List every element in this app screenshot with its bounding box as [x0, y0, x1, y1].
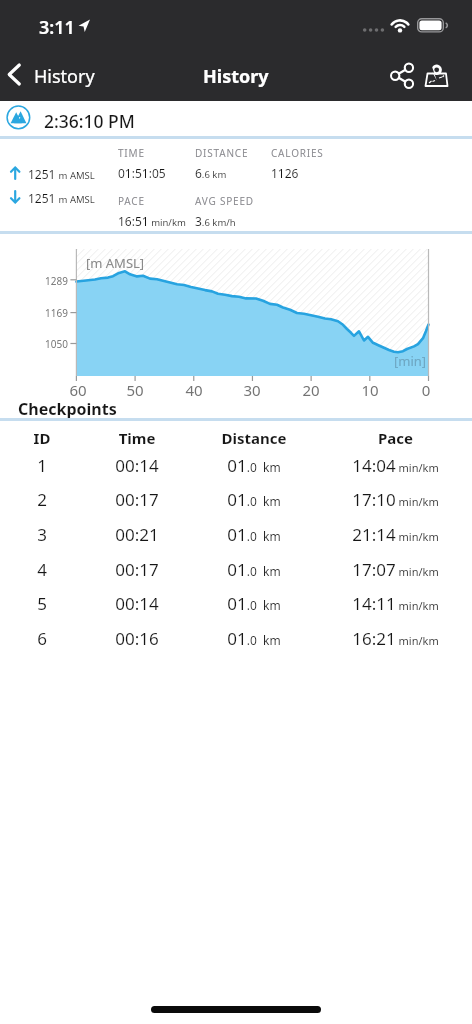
staticText: 1169	[34, 306, 68, 320]
staticText: 3.6 km/h	[195, 213, 236, 229]
button[interactable]	[0, 447, 472, 481]
button[interactable]	[422, 58, 452, 90]
button[interactable]	[0, 516, 472, 550]
staticText: 01.0 km	[204, 488, 304, 511]
staticText: 60	[63, 380, 93, 400]
staticText: 1289	[34, 274, 68, 288]
staticText: 20	[296, 380, 326, 400]
staticText: 21:14 min/km	[338, 523, 453, 546]
staticText: [min]	[394, 352, 427, 370]
staticText: 1	[12, 454, 72, 477]
staticText: 40	[179, 380, 209, 400]
staticText: 1251 m AMSL	[28, 166, 95, 182]
button[interactable]	[0, 101, 472, 137]
staticText: 00:14	[97, 592, 177, 615]
staticText: 0	[411, 380, 441, 400]
staticText: 00:16	[97, 627, 177, 650]
staticText: 3	[12, 523, 72, 546]
staticText: 1251 m AMSL	[28, 190, 95, 206]
staticText: DISTANCE	[195, 146, 249, 160]
staticText: 00:17	[97, 488, 177, 511]
staticText: 14:11 min/km	[338, 592, 453, 615]
staticText: 1126	[271, 165, 299, 181]
staticText: 16:51 min/km	[118, 213, 186, 229]
button[interactable]	[0, 481, 472, 515]
staticText: 3:11	[39, 15, 75, 40]
staticText: History	[203, 64, 269, 89]
staticText: Pace	[338, 428, 453, 448]
staticText: 4	[12, 558, 72, 581]
staticText: 6.6 km	[195, 165, 227, 181]
staticText: 01:51:05	[118, 165, 166, 181]
staticText: Distance	[204, 428, 304, 448]
button[interactable]	[0, 551, 472, 585]
button[interactable]: History	[6, 58, 110, 94]
staticText: 17:10 min/km	[338, 488, 453, 511]
staticText: 01.0 km	[204, 627, 304, 650]
staticText: 30	[237, 380, 267, 400]
staticText: 01.0 km	[204, 592, 304, 615]
staticText: 01.0 km	[204, 523, 304, 546]
staticText: 00:21	[97, 523, 177, 546]
staticText: 2	[12, 488, 72, 511]
staticText: 00:14	[97, 454, 177, 477]
staticText: 14:04 min/km	[338, 454, 453, 477]
staticText: 2:36:10 PM	[44, 109, 135, 133]
staticText: 17:07 min/km	[338, 558, 453, 581]
staticText: 01.0 km	[204, 454, 304, 477]
staticText: 16:21 min/km	[338, 627, 453, 650]
staticText: 5	[12, 592, 72, 615]
button[interactable]	[388, 60, 414, 90]
button[interactable]	[0, 620, 472, 654]
staticText: Time	[97, 428, 177, 448]
button[interactable]	[0, 585, 472, 619]
staticText: 6	[12, 627, 72, 650]
staticText: History	[34, 64, 95, 89]
staticText: [m AMSL]	[86, 254, 145, 272]
staticText: ID	[12, 428, 72, 448]
staticText: TIME	[118, 146, 145, 160]
staticText: 10	[355, 380, 385, 400]
staticText: CALORIES	[271, 146, 324, 160]
staticText: 50	[120, 380, 150, 400]
staticText: Checkpoints	[18, 398, 117, 420]
staticText: 1050	[34, 337, 68, 351]
staticText: 01.0 km	[204, 558, 304, 581]
staticText: 00:17	[97, 558, 177, 581]
staticText: AVG SPEED	[195, 194, 254, 208]
staticText: PACE	[118, 194, 145, 208]
